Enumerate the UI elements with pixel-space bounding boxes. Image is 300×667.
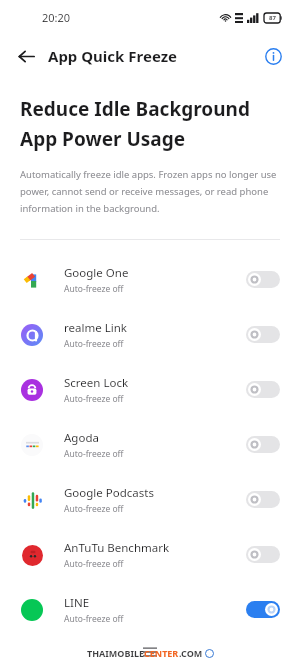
button[interactable]: Auto-freeze toggle	[246, 381, 280, 398]
button[interactable]: Back	[8, 38, 44, 74]
staticText: Automatically freeze idle apps. Frozen a…	[20, 168, 277, 181]
staticText: LINE	[64, 595, 90, 611]
staticText: information in the background.	[20, 202, 160, 215]
button[interactable]: AnTuTu Benchmark	[0, 527, 300, 582]
button[interactable]: Menu	[133, 637, 167, 667]
button[interactable]: Auto-freeze toggle	[246, 601, 280, 618]
staticText: 20:20	[42, 10, 71, 25]
staticText: App Quick Freeze	[48, 46, 178, 66]
staticText: Google One	[64, 265, 129, 281]
staticText: .COM	[179, 647, 203, 659]
staticText: App Power Usage	[20, 126, 186, 152]
staticText: Auto-freeze off	[64, 613, 124, 625]
button[interactable]: LINE	[0, 582, 300, 637]
staticText: Auto-freeze off	[64, 503, 124, 515]
button[interactable]: Agoda	[0, 417, 300, 472]
staticText: 87	[269, 14, 276, 22]
staticText: power, cannot send or receive messages, …	[20, 185, 269, 198]
staticText: Agoda	[64, 430, 99, 446]
staticText: Auto-freeze off	[64, 283, 124, 295]
button[interactable]: Auto-freeze toggle	[246, 436, 280, 453]
button[interactable]: Screen Lock	[0, 362, 300, 417]
button[interactable]: Auto-freeze toggle	[246, 326, 280, 343]
staticText: realme Link	[64, 320, 127, 336]
button[interactable]: Auto-freeze toggle	[246, 546, 280, 563]
staticText: THAIMOBILE	[87, 647, 144, 659]
staticText: Screen Lock	[64, 375, 129, 391]
button[interactable]: Auto-freeze toggle	[246, 491, 280, 508]
button[interactable]: realme Link	[0, 307, 300, 362]
button[interactable]: Information	[256, 39, 290, 73]
staticText: Auto-freeze off	[64, 393, 124, 405]
staticText: CENTER	[144, 647, 179, 659]
staticText: Auto-freeze off	[64, 448, 124, 460]
button[interactable]: Auto-freeze toggle	[246, 271, 280, 288]
staticText: AnTuTu Benchmark	[64, 540, 170, 556]
staticText: Auto-freeze off	[64, 558, 124, 570]
button[interactable]: Google One	[0, 252, 300, 307]
button[interactable]: Google Podcasts	[0, 472, 300, 527]
staticText: Reduce Idle Background	[20, 96, 250, 122]
staticText: Google Podcasts	[64, 485, 154, 501]
staticText: Auto-freeze off	[64, 338, 124, 350]
